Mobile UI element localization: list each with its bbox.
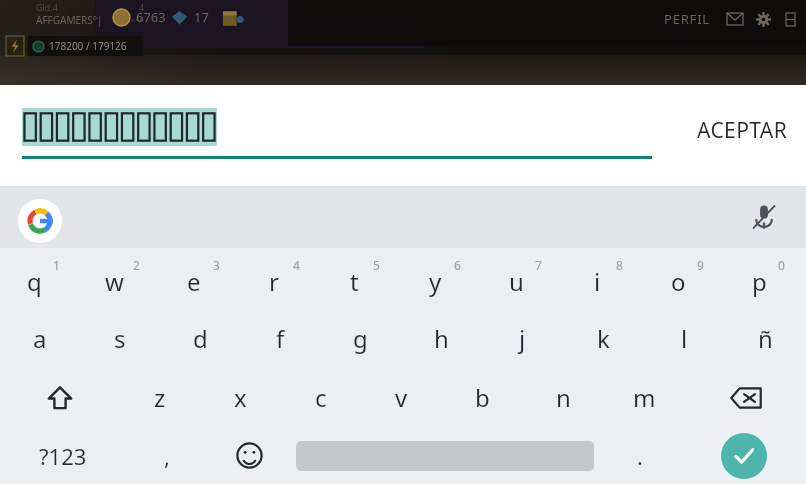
staticText: v	[395, 381, 408, 414]
button[interactable]: p	[725, 248, 806, 308]
staticText: 3	[213, 257, 220, 273]
button[interactable]: b	[442, 368, 523, 427]
staticText: g	[353, 322, 368, 355]
button[interactable]: r	[240, 248, 320, 308]
button[interactable]: ,	[125, 427, 208, 484]
staticText: u	[509, 265, 524, 298]
button[interactable]: Ajustes	[752, 8, 774, 30]
staticText: y	[429, 265, 442, 298]
staticText: 7	[535, 257, 542, 273]
button[interactable]: d	[160, 308, 240, 368]
staticText: 4	[139, 1, 145, 13]
button[interactable]: Espacio	[291, 427, 598, 484]
staticText: 6763	[136, 8, 166, 26]
button[interactable]: o	[644, 248, 725, 308]
button[interactable]	[22, 108, 217, 146]
staticText: f	[276, 322, 285, 355]
staticText: q	[27, 265, 42, 298]
staticText: ?123	[39, 441, 87, 471]
staticText: Gld.4	[36, 1, 58, 13]
staticText: 6	[454, 257, 461, 273]
staticText: 8	[616, 257, 623, 273]
staticText: n	[556, 381, 571, 414]
button[interactable]: v	[361, 368, 442, 427]
button[interactable]: s	[80, 308, 160, 368]
staticText: i	[594, 265, 601, 298]
button[interactable]: k	[563, 308, 644, 368]
button[interactable]: q	[0, 248, 80, 308]
staticText: 17	[194, 8, 209, 26]
staticText: p	[752, 265, 767, 298]
button[interactable]: Emoji	[208, 427, 291, 484]
staticText: 5	[373, 257, 380, 273]
staticText: 9	[697, 257, 704, 273]
staticText: .	[637, 441, 643, 471]
button[interactable]: m	[604, 368, 685, 427]
button[interactable]: j	[482, 308, 563, 368]
staticText: Lv.44	[127, 15, 144, 25]
staticText: PERFIL	[664, 10, 710, 28]
button[interactable]: i	[563, 248, 644, 308]
staticText: m	[633, 381, 656, 414]
staticText: d	[193, 322, 208, 355]
staticText: ,	[164, 441, 170, 471]
button[interactable]: Intro	[681, 427, 806, 484]
button[interactable]: Micrófono desactivado	[742, 195, 786, 239]
button[interactable]: ACEPTAR	[679, 104, 806, 157]
button[interactable]: x	[200, 368, 280, 427]
button[interactable]: y	[401, 248, 482, 308]
staticText: z	[154, 381, 166, 414]
button[interactable]: Mayúsculas	[0, 368, 120, 427]
button[interactable]: h	[401, 308, 482, 368]
staticText: e	[187, 265, 201, 298]
button[interactable]: .	[598, 427, 681, 484]
button[interactable]: e	[160, 248, 240, 308]
staticText: 2	[133, 257, 140, 273]
staticText: h	[434, 322, 449, 355]
button[interactable]: u	[482, 248, 563, 308]
button[interactable]: Borrar	[685, 368, 806, 427]
button[interactable]: f	[240, 308, 320, 368]
button[interactable]: PERFIL	[660, 8, 714, 30]
staticText: s	[114, 322, 126, 355]
staticText: b	[475, 381, 490, 414]
staticText: w	[105, 265, 124, 298]
staticText: x	[234, 381, 247, 414]
button[interactable]: c	[280, 368, 361, 427]
button[interactable]: g	[320, 308, 401, 368]
staticText: AFFGAMERS°|	[36, 13, 103, 27]
button[interactable]: Menú	[780, 9, 800, 29]
staticText: l	[681, 322, 688, 355]
staticText: o	[671, 265, 686, 298]
button[interactable]: n	[523, 368, 604, 427]
staticText: 4	[293, 257, 300, 273]
staticText: ACEPTAR	[697, 116, 788, 145]
staticText: c	[315, 381, 327, 414]
staticText: k	[597, 322, 610, 355]
button[interactable]: w	[80, 248, 160, 308]
staticText: ñ	[758, 322, 773, 355]
button[interactable]: a	[0, 308, 80, 368]
button[interactable]: l	[644, 308, 725, 368]
staticText: 1	[53, 257, 60, 273]
button[interactable]: ?123	[0, 427, 125, 484]
staticText: 0	[778, 257, 785, 273]
staticText: j	[519, 322, 526, 355]
button[interactable]: ñ	[725, 308, 806, 368]
button[interactable]: Mensajes	[724, 8, 746, 30]
button[interactable]: t	[320, 248, 401, 308]
staticText: t	[350, 265, 359, 298]
button[interactable]: Búsqueda de Google	[18, 199, 62, 243]
staticText: r	[269, 265, 279, 298]
staticText: 178200 / 179126	[49, 39, 127, 53]
staticText: a	[33, 322, 47, 355]
button[interactable]: z	[120, 368, 200, 427]
